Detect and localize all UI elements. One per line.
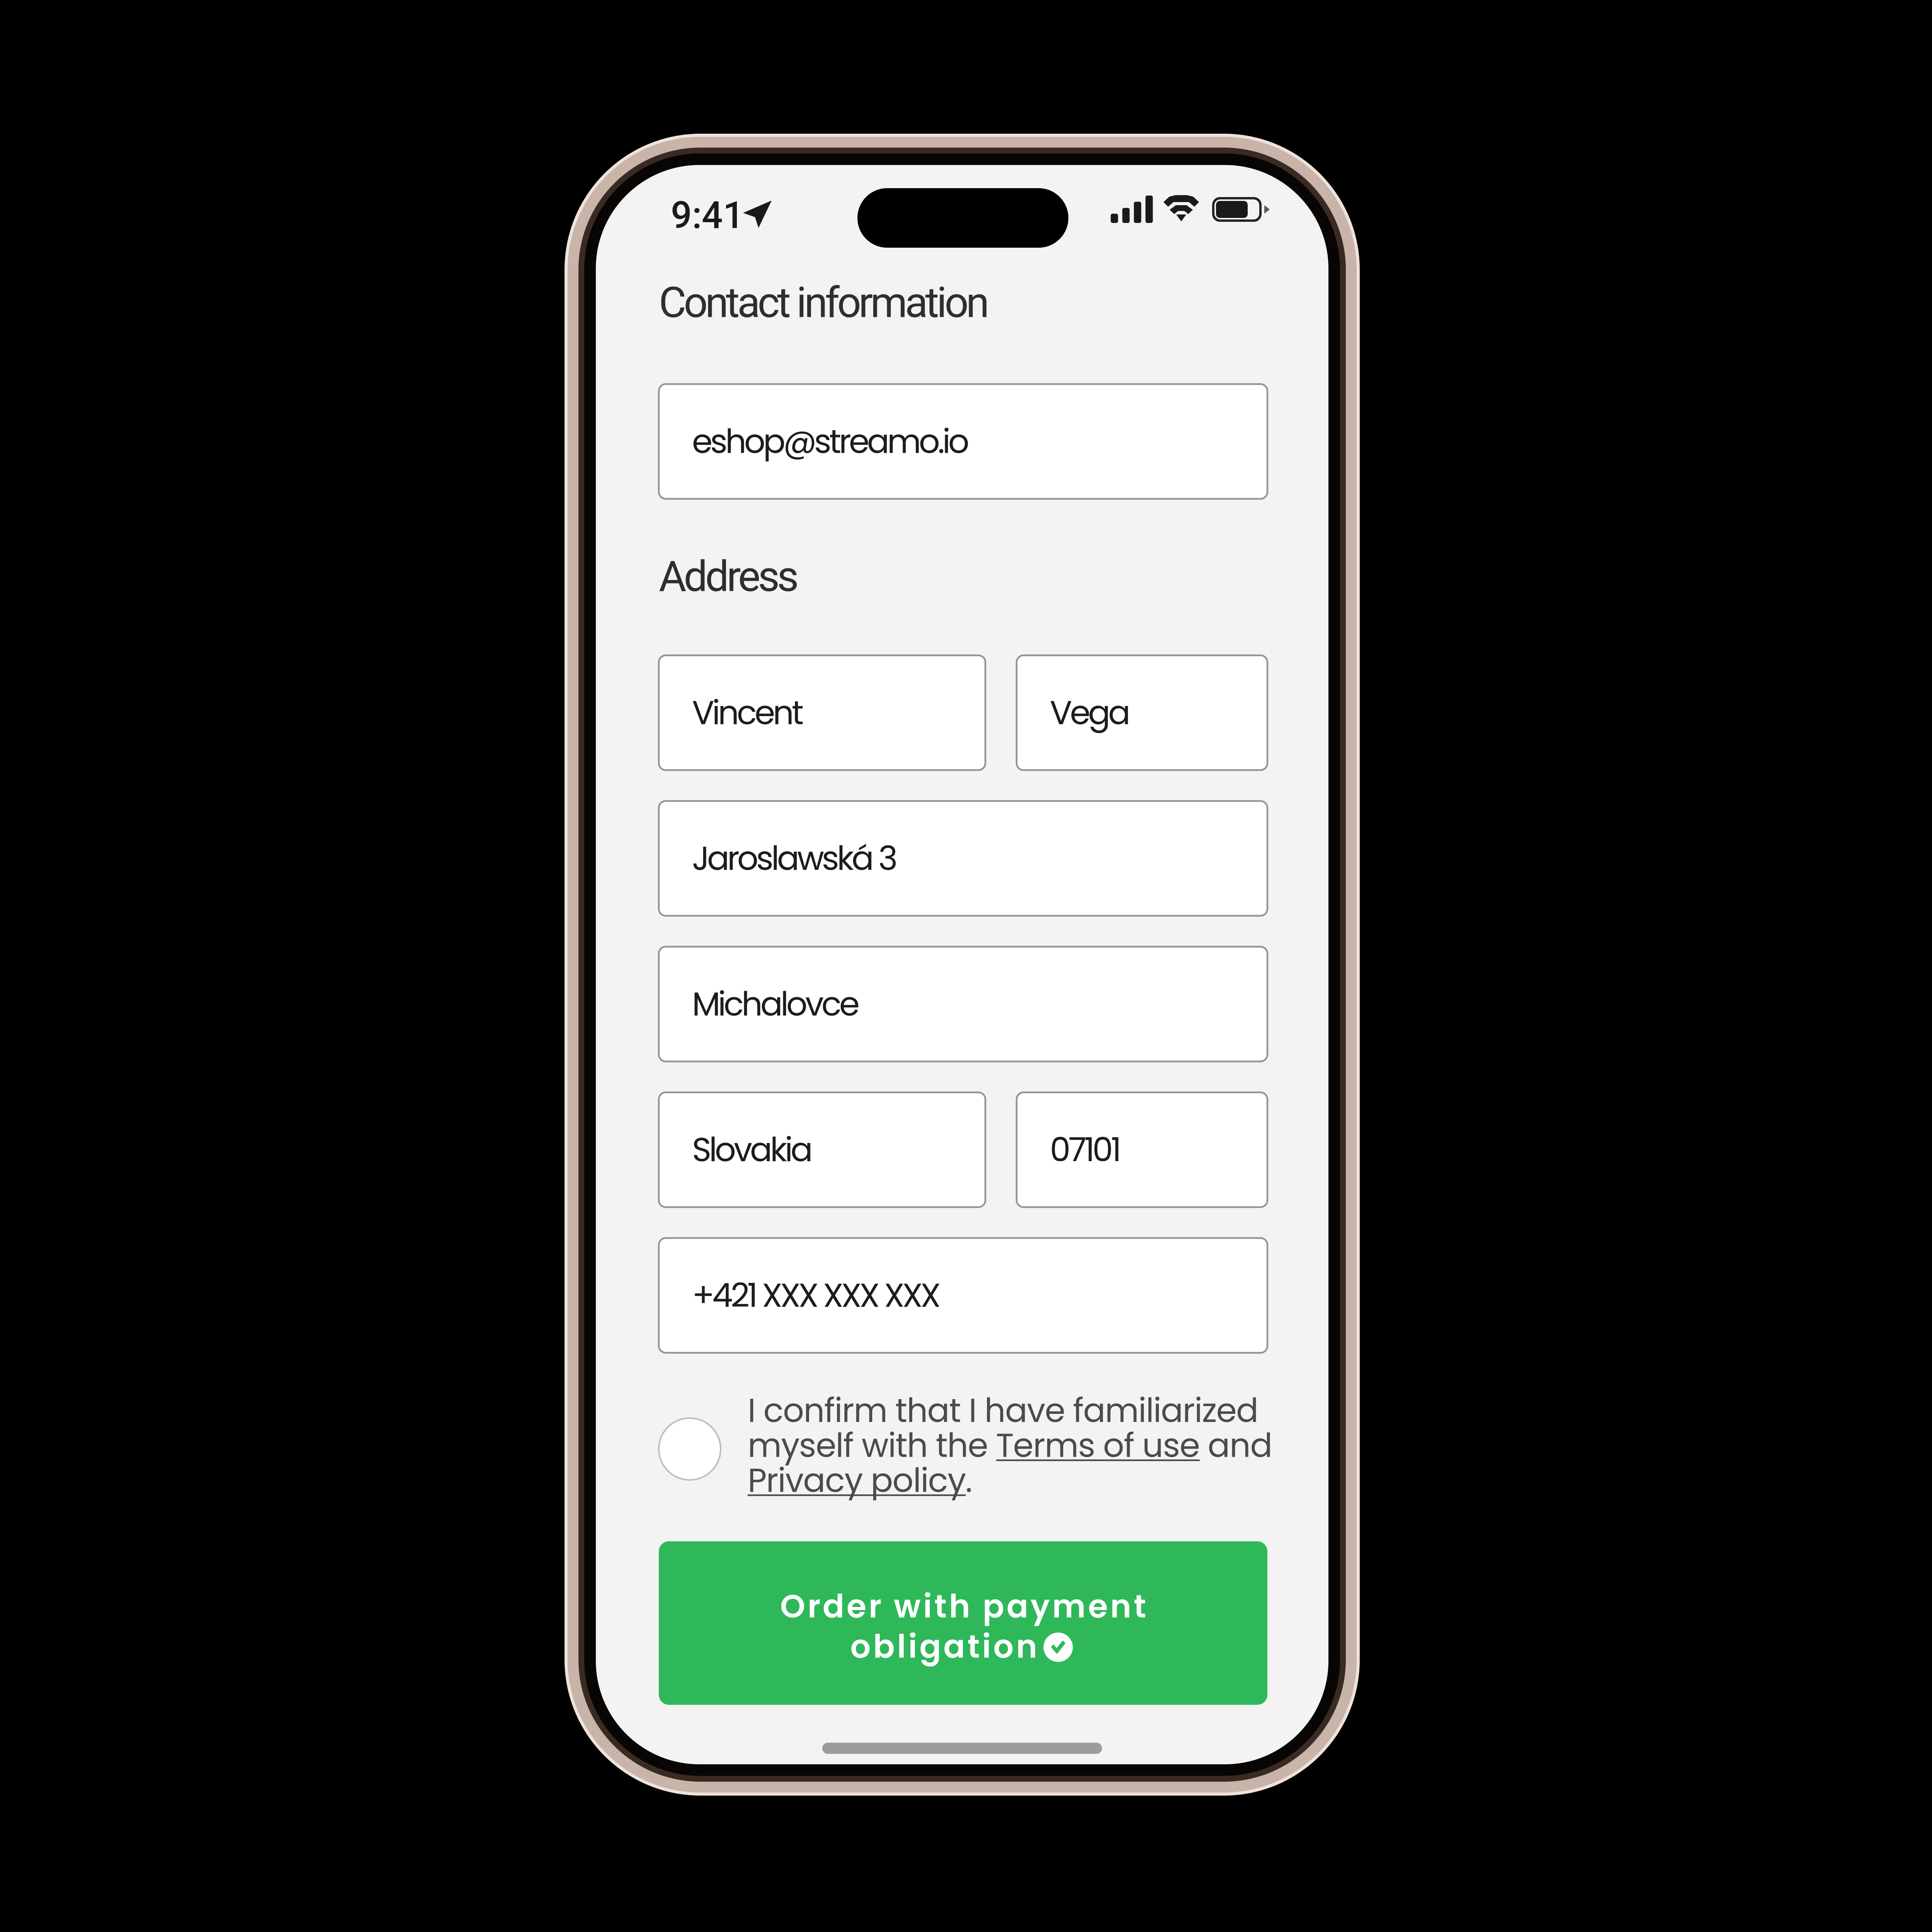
staticText: Michalovce (692, 981, 860, 1027)
button[interactable]: eshop@streamo.io (659, 384, 1267, 499)
staticText: Jaroslawská 3 (692, 835, 898, 881)
button[interactable]: Jaroslawská 3 (659, 801, 1267, 916)
staticText: Contact information (659, 278, 989, 327)
button[interactable]: Vincent (659, 655, 985, 770)
button[interactable]: Vega (1017, 655, 1267, 770)
staticText: 9:41 (671, 194, 744, 237)
button[interactable]: Order with payment (659, 1541, 1267, 1705)
staticText: Vincent (692, 690, 804, 736)
button[interactable]: Michalovce (659, 947, 1267, 1061)
staticText: Slovakia (692, 1127, 813, 1173)
button[interactable]: 07101 (1017, 1092, 1267, 1207)
staticText: 07101 (1050, 1127, 1121, 1173)
button[interactable]: +421 XXX XXX XXX (659, 1238, 1267, 1353)
staticText: Address (659, 552, 799, 601)
button[interactable]: I confirm that I have familiarized mysel… (659, 1388, 1267, 1515)
staticText: I confirm that I have familiarized mysel… (748, 1388, 1273, 1503)
staticText: Vega (1050, 690, 1131, 736)
staticText: obligation (850, 1624, 1037, 1669)
staticText: Order with payment (780, 1584, 1146, 1629)
staticText: +421 XXX XXX XXX (692, 1272, 941, 1319)
staticText: eshop@streamo.io (692, 418, 969, 465)
button[interactable]: Slovakia (659, 1092, 985, 1207)
